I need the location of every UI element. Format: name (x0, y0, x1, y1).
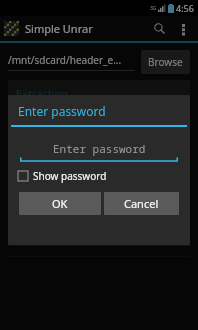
staticText: Extracting... (16, 86, 77, 101)
button[interactable]: Enter password (20, 141, 178, 156)
staticText: 4:56 (176, 2, 194, 14)
button[interactable]: Search (146, 16, 172, 41)
button[interactable]: Cancel (104, 192, 179, 215)
button[interactable]: Show password (18, 169, 107, 183)
staticText: Show password (33, 169, 107, 183)
staticText: 3G (150, 5, 157, 12)
staticText: Simple Unrar (25, 21, 93, 36)
button[interactable]: OK (19, 192, 101, 215)
staticText: Cancel (124, 196, 159, 211)
staticText: Enter password (53, 141, 146, 156)
staticText: /mnt/sdcard/header_e... (8, 53, 122, 67)
button[interactable]: Browse (141, 50, 190, 74)
staticText: Browse (148, 55, 183, 69)
button[interactable]: More options (172, 18, 194, 40)
staticText: Enter password (18, 103, 106, 119)
staticText: OK (52, 196, 68, 211)
